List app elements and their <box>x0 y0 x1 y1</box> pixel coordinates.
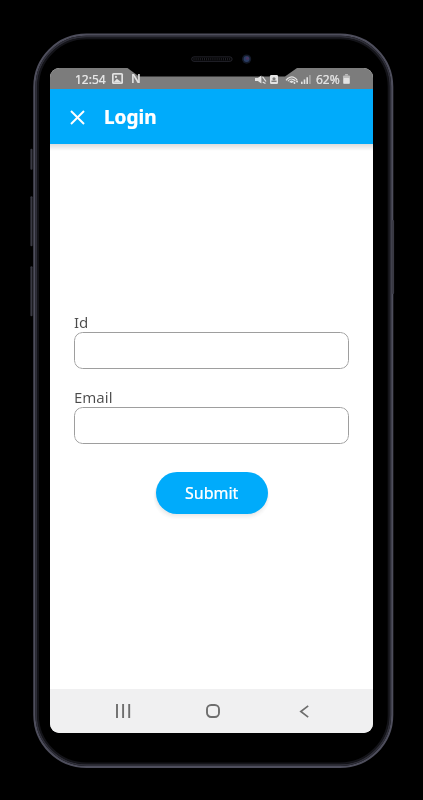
button[interactable] <box>74 407 349 444</box>
staticText: Login <box>104 104 157 130</box>
staticText: Id <box>74 312 89 332</box>
staticText: 12:54 <box>75 71 106 87</box>
button[interactable]: Home <box>193 691 233 731</box>
staticText: 62% <box>316 71 340 87</box>
staticText: Submit <box>185 482 239 504</box>
button[interactable] <box>74 332 349 369</box>
staticText: Email <box>74 387 113 407</box>
button[interactable]: Close <box>62 102 92 132</box>
button[interactable]: Submit <box>156 472 268 514</box>
button[interactable]: Recents <box>103 691 143 731</box>
button[interactable]: Back <box>284 691 324 731</box>
staticText: N <box>131 70 141 87</box>
